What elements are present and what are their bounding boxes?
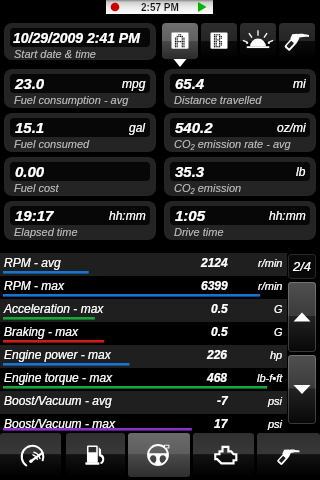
staticText: gal [129, 121, 146, 134]
button[interactable]: Braking - max [0, 322, 287, 345]
staticText: CO₂ emission rate - avg [174, 138, 291, 150]
staticText: 19:17 [15, 207, 54, 224]
button[interactable]: Scroll down [288, 355, 316, 424]
button[interactable]: Today [240, 23, 276, 59]
button[interactable]: 35.3 [164, 157, 316, 196]
staticText: Elapsed time [14, 226, 78, 238]
staticText: lb-f•ft [257, 372, 283, 384]
staticText: 0.5 [211, 302, 228, 315]
button[interactable]: Trip B [201, 23, 237, 59]
staticText: mpg [122, 77, 146, 90]
button[interactable]: Boost/Vacuum - avg [0, 391, 287, 414]
staticText: Braking - max [4, 325, 79, 338]
staticText: 1:05 [175, 207, 206, 224]
staticText: Engine torque - max [4, 371, 113, 384]
staticText: Fuel consumption - avg [14, 94, 129, 106]
button[interactable]: 10/29/2009 2:41 PM [4, 23, 156, 60]
staticText: hh:mm [269, 209, 306, 222]
staticText: Distance travelled [174, 94, 262, 106]
staticText: 6399 [201, 279, 228, 292]
button[interactable]: 23.0 [4, 69, 156, 108]
button[interactable]: Dashboard [0, 433, 61, 477]
staticText: Acceleration - max [4, 302, 104, 315]
button[interactable]: Refuel [257, 433, 320, 477]
staticText: CO₂ emission [174, 182, 242, 194]
staticText: 2:57 PM [141, 2, 179, 13]
button[interactable]: 15.1 [4, 113, 156, 152]
staticText: -7 [217, 394, 228, 407]
button[interactable]: Engine power - max [0, 345, 287, 368]
staticText: hh:mm [109, 209, 146, 222]
button[interactable]: RPM - avg [0, 253, 287, 276]
button[interactable]: 0.00 [4, 157, 156, 196]
staticText: psi [268, 418, 283, 430]
staticText: 65.4 [175, 75, 205, 92]
button[interactable]: Diagnostics [193, 433, 254, 477]
staticText: Boost/Vacuum - avg [4, 394, 112, 407]
staticText: RPM - avg [4, 256, 61, 269]
button[interactable]: Boost/Vacuum - max [0, 414, 287, 433]
button[interactable]: Trip A [162, 23, 198, 59]
staticText: lb [296, 165, 306, 178]
button[interactable]: Engine torque - max [0, 368, 287, 391]
staticText: hp [270, 349, 283, 361]
staticText: 2124 [201, 256, 228, 269]
button[interactable]: RPM - max [0, 276, 287, 299]
button[interactable]: 19:17 [4, 201, 156, 240]
button[interactable]: 2/4 [288, 254, 316, 279]
staticText: Boost/Vacuum - max [4, 417, 115, 430]
button[interactable]: 1:05 [164, 201, 316, 240]
staticText: 540.2 [175, 119, 213, 136]
staticText: psi [268, 395, 283, 407]
staticText: 0.00 [15, 163, 45, 180]
button[interactable]: Fuel [66, 433, 125, 477]
staticText: Fuel cost [14, 182, 59, 194]
staticText: G [274, 303, 283, 315]
staticText: 17 [214, 417, 228, 430]
button[interactable]: Tank [279, 23, 315, 59]
button[interactable]: Scroll up [288, 282, 316, 352]
button[interactable]: 540.2 [164, 113, 316, 152]
staticText: 15.1 [15, 119, 45, 136]
staticText: 10/29/2009 2:41 PM [13, 30, 140, 46]
staticText: G [274, 326, 283, 338]
staticText: 23.0 [15, 75, 45, 92]
staticText: 226 [207, 348, 228, 361]
staticText: Engine power - max [4, 348, 111, 361]
staticText: r/min [258, 280, 283, 292]
staticText: RPM - max [4, 279, 64, 292]
staticText: oz/mi [277, 121, 306, 134]
staticText: 0.5 [211, 325, 228, 338]
staticText: Start date & time [14, 48, 96, 60]
staticText: 35.3 [175, 163, 205, 180]
staticText: 468 [207, 371, 228, 384]
staticText: r/min [258, 257, 283, 269]
button[interactable]: Trip [128, 433, 190, 477]
staticText: 2/4 [293, 259, 312, 274]
staticText: Drive time [174, 226, 224, 238]
button[interactable]: Acceleration - max [0, 299, 287, 322]
button[interactable]: 65.4 [164, 69, 316, 108]
staticText: Fuel consumed [14, 138, 90, 150]
staticText: mi [293, 77, 306, 90]
